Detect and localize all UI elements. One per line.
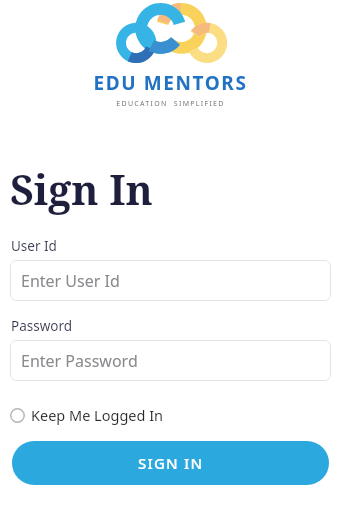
- button[interactable]: Keep Me Logged In: [8, 401, 166, 429]
- staticText: Enter User Id: [21, 270, 120, 292]
- button[interactable]: SIGN IN: [12, 441, 329, 485]
- staticText: SIGN IN: [138, 453, 204, 473]
- staticText: EDU MENTORS: [93, 70, 248, 96]
- staticText: User Id: [11, 237, 57, 255]
- staticText: EDUCATION SIMPLIFIED: [116, 99, 225, 109]
- button[interactable]: Enter User Id: [10, 260, 331, 301]
- staticText: Password: [11, 317, 73, 335]
- staticText: Keep Me Logged In: [31, 405, 164, 425]
- staticText: Enter Password: [21, 350, 138, 372]
- button[interactable]: Enter Password: [10, 340, 331, 381]
- staticText: Sign In: [10, 161, 153, 217]
